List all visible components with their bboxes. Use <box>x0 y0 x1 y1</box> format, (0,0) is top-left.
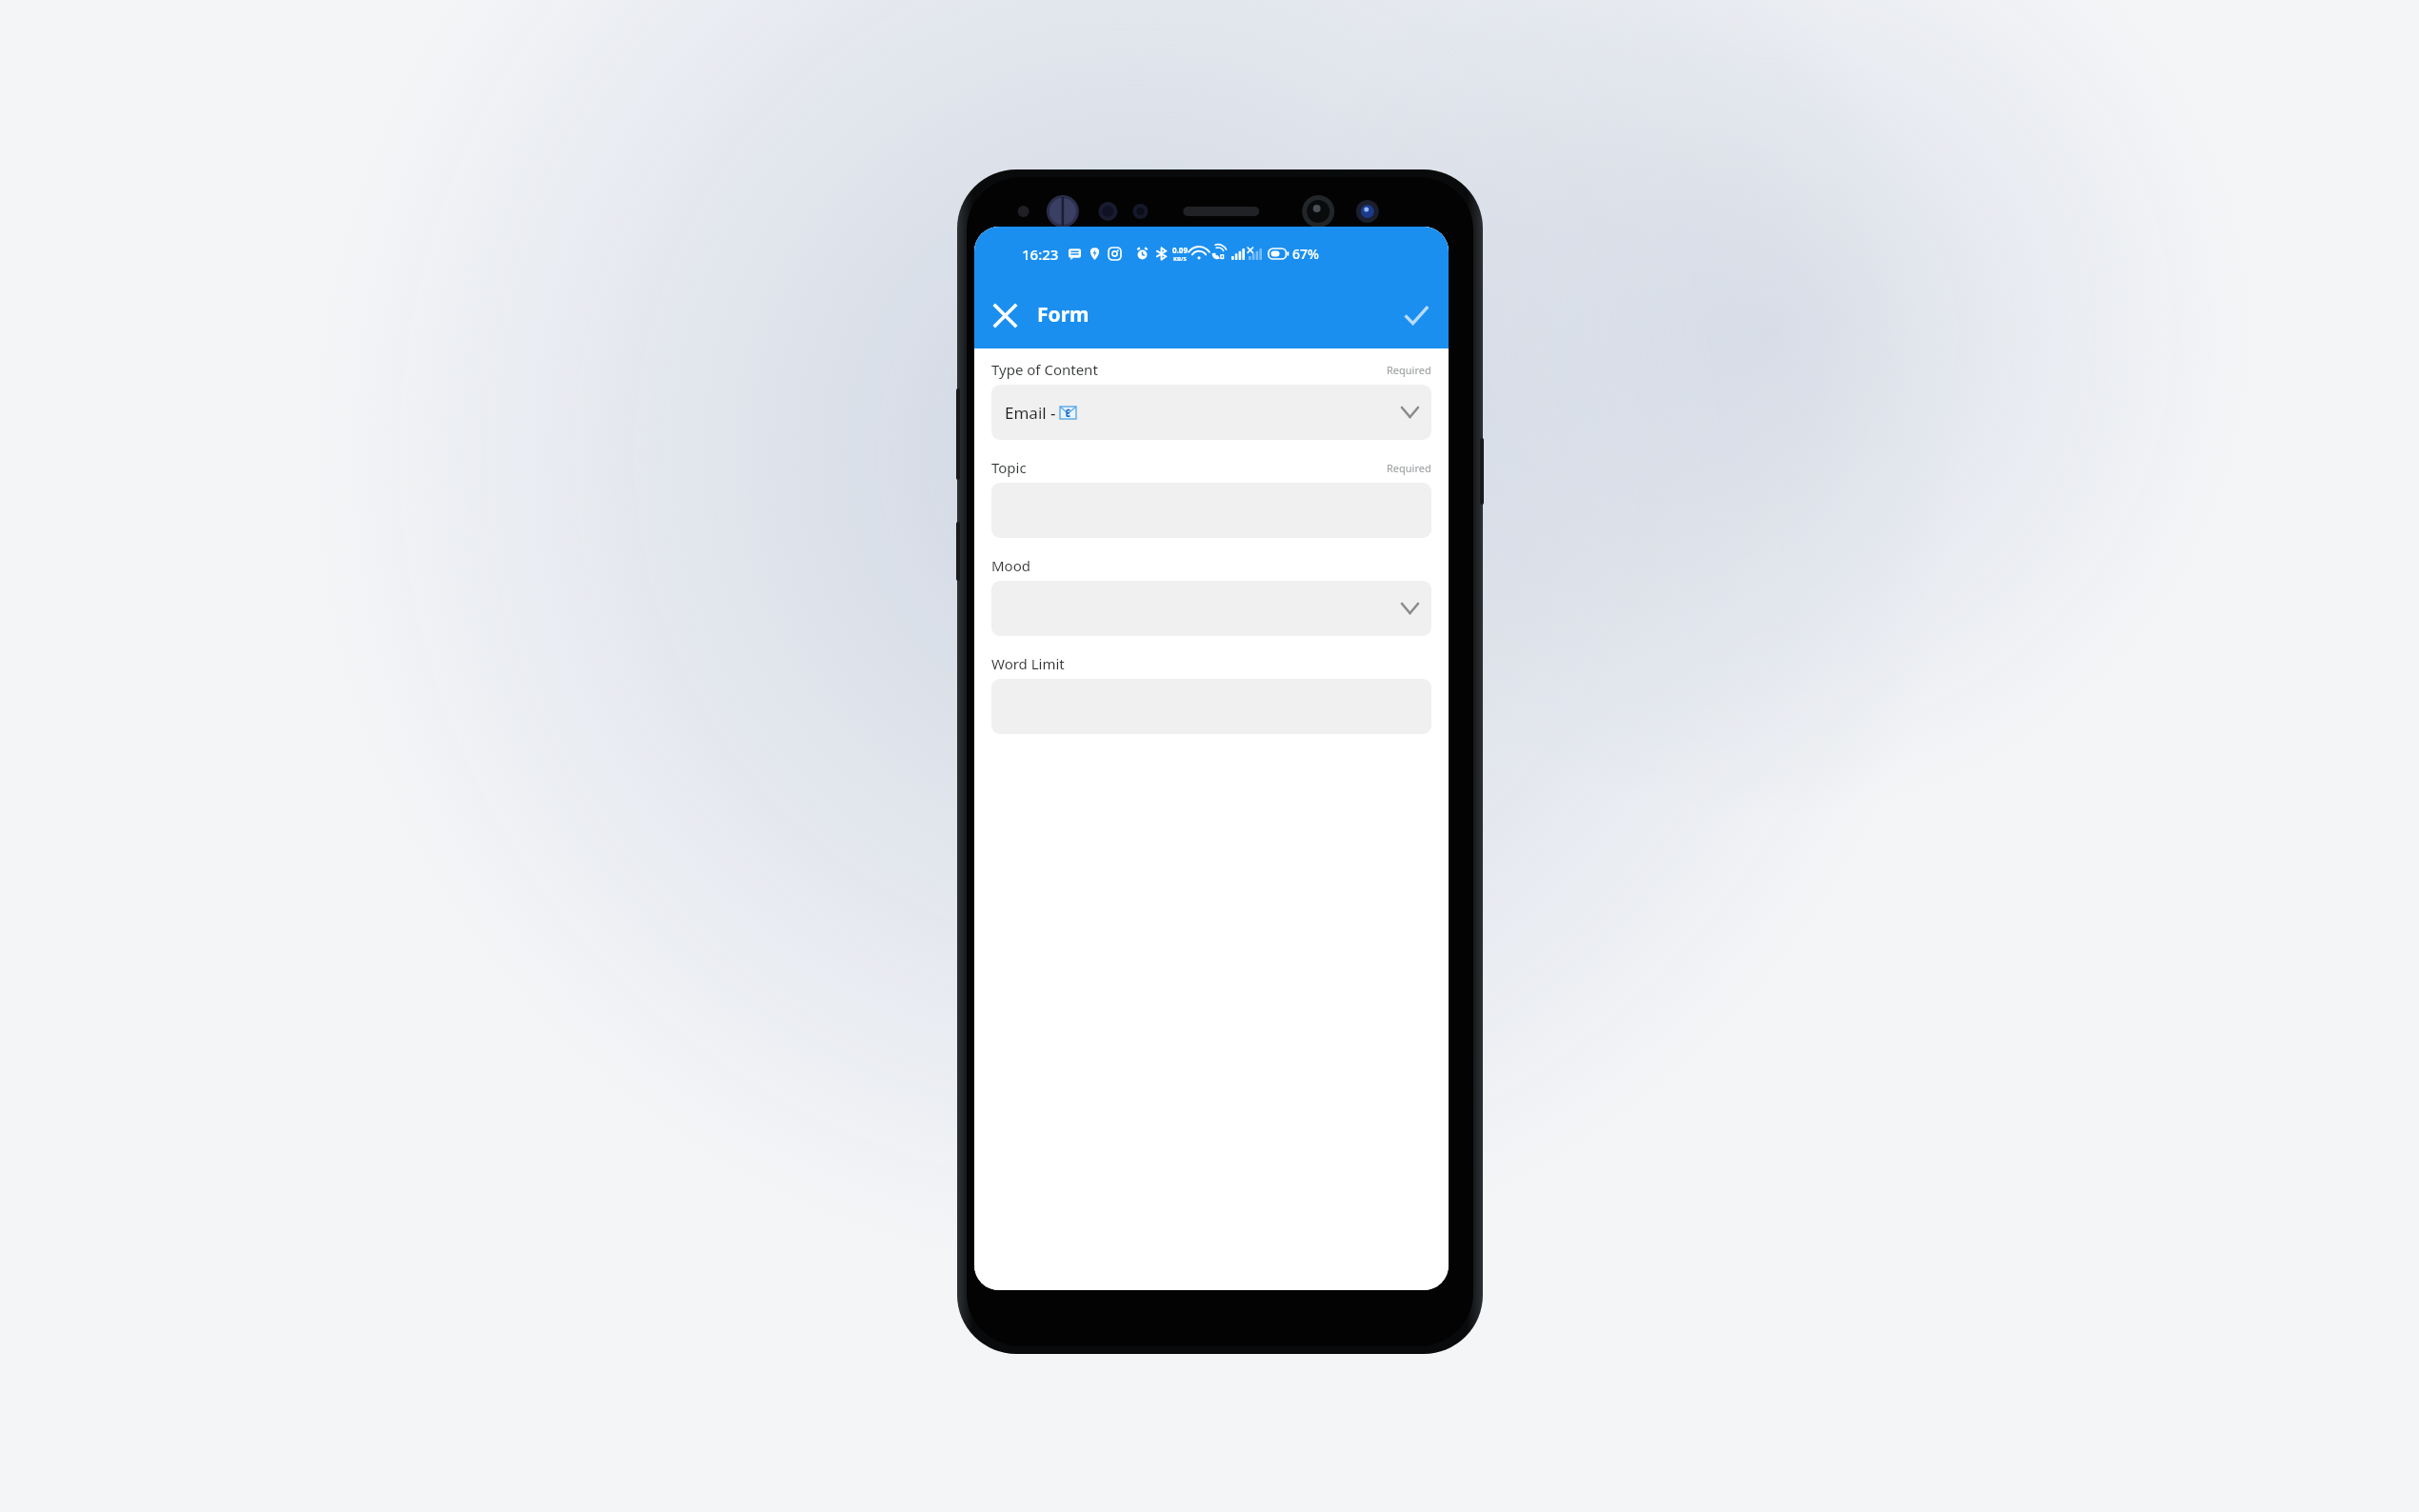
staticText: Topic <box>991 458 1027 477</box>
button[interactable] <box>991 581 1431 636</box>
staticText: Required <box>1387 363 1431 377</box>
staticText: 0.09 <box>1172 245 1188 255</box>
button[interactable]: Close <box>982 292 1028 338</box>
staticText: Mood <box>991 556 1030 575</box>
staticText: Email - <box>1005 402 1060 424</box>
staticText: Word Limit <box>991 654 1065 673</box>
staticText: KB/S <box>1173 255 1187 263</box>
staticText: 16:23 <box>1022 245 1059 264</box>
staticText: Form <box>1037 301 1090 328</box>
button[interactable]: Email - <box>991 385 1431 440</box>
button[interactable]: Save form <box>1391 290 1441 340</box>
staticText: Type of Content <box>991 360 1098 379</box>
staticText: 67% <box>1292 245 1319 263</box>
staticText: Required <box>1387 461 1431 475</box>
